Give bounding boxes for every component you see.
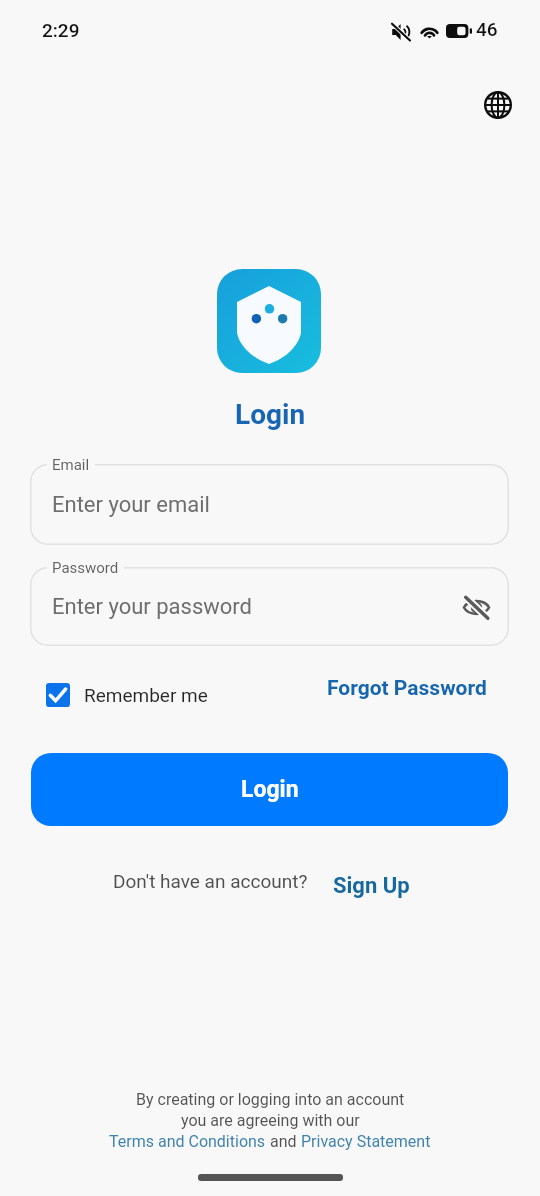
staticText: you are agreeing with our (181, 1111, 360, 1130)
staticText: Remember me (84, 684, 208, 706)
staticText: 2:29 (42, 19, 80, 41)
staticText: Privacy Statement (301, 1132, 431, 1151)
staticText: Email (52, 456, 90, 474)
staticText: Don't have an account? (113, 870, 308, 892)
staticText: Login (241, 776, 299, 803)
staticText: Enter your email (52, 492, 210, 518)
button[interactable]: Change language (476, 83, 520, 127)
staticText: Enter your password (52, 594, 253, 620)
staticText: Forgot Password (327, 676, 487, 701)
staticText: Sign Up (333, 873, 410, 899)
button[interactable]: Remember me (46, 683, 208, 707)
button[interactable]: Enter your password (30, 567, 509, 646)
staticText: and (266, 1132, 301, 1151)
button[interactable]: Enter your email (30, 464, 509, 545)
button[interactable]: Show password (460, 591, 492, 623)
staticText: Login (235, 398, 306, 431)
button[interactable]: Terms and Conditions (109, 1132, 266, 1151)
button[interactable]: Privacy Statement (301, 1132, 431, 1151)
staticText: Terms and Conditions (109, 1132, 266, 1151)
staticText: Password (52, 559, 119, 577)
button[interactable]: Login (31, 753, 508, 826)
staticText: 46 (476, 18, 498, 40)
staticText: By creating or logging into an account (136, 1090, 405, 1109)
button[interactable]: Forgot Password (327, 676, 487, 701)
button[interactable]: Sign Up (333, 873, 410, 899)
